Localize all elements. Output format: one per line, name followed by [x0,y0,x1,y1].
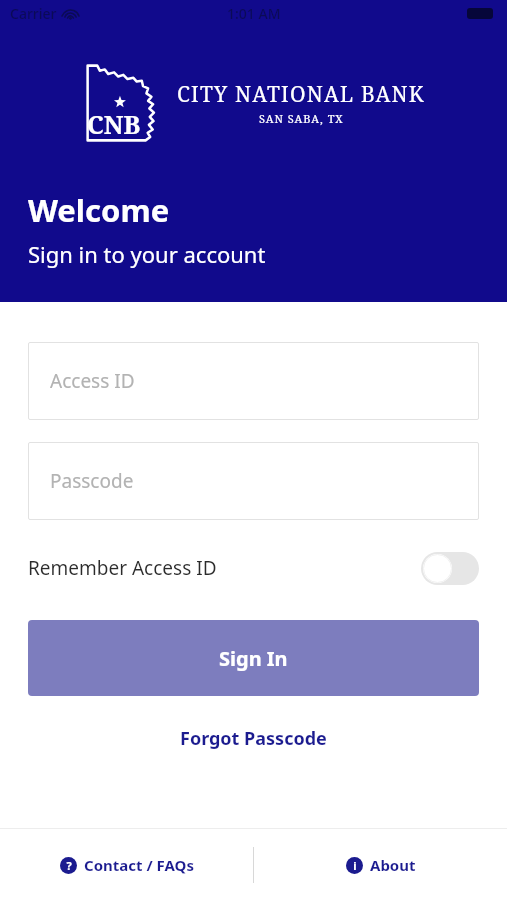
staticText: Access ID [50,368,135,394]
button[interactable]: Access ID [28,342,479,420]
button[interactable]: Forgot Passcode [28,726,479,751]
staticText: i [353,858,357,873]
staticText: SAN SABA, TX [259,111,344,126]
button[interactable]: Information [346,855,416,875]
staticText: ? [66,858,72,873]
button[interactable]: Passcode [28,442,479,520]
staticText: About [370,855,416,875]
staticText: Carrier [10,4,57,23]
staticText: Remember Access ID [28,555,217,581]
staticText: CITY NATIONAL BANK [177,80,425,109]
staticText: 1:01 AM [227,4,281,23]
staticText: Forgot Passcode [180,726,327,751]
staticText: Welcome [28,189,170,231]
staticText: Passcode [50,468,134,494]
button[interactable]: Help [60,855,194,875]
other: Information [346,857,363,874]
staticText: CNB [87,107,141,141]
staticText: Sign in to your account [28,239,266,269]
staticText: Contact / FAQs [84,855,194,875]
button[interactable]: Remember Access ID [28,546,479,590]
staticText: Sign In [219,645,288,672]
other: Help [60,857,77,874]
button[interactable]: Sign In [28,620,479,696]
